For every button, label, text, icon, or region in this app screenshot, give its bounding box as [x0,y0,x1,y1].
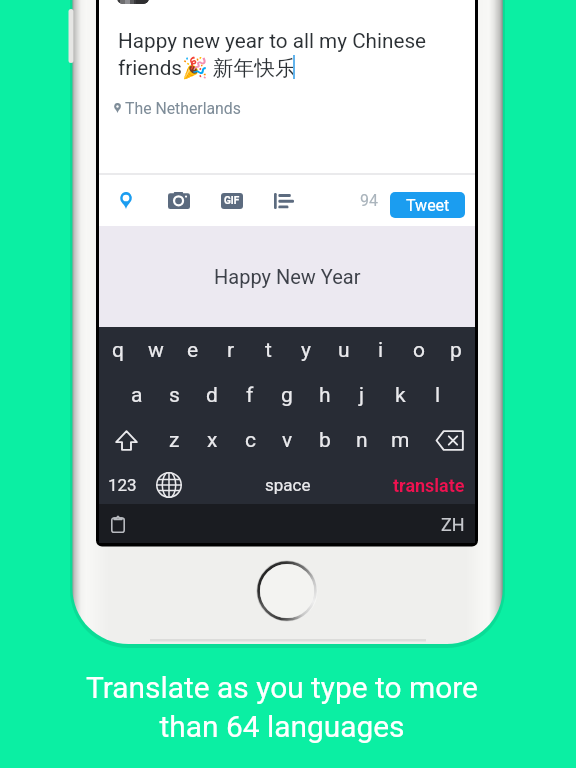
staticText: t [265,338,272,363]
staticText: f [246,383,254,408]
staticText: Happy new year to all my Chinese [118,29,427,53]
button[interactable]: t [249,329,287,371]
button[interactable]: Add GIF [211,180,253,222]
staticText: space [265,475,311,495]
button[interactable]: b [306,419,344,461]
staticText: s [169,383,180,408]
staticText: p [450,338,462,363]
staticText: Translate as you type to more than 64 la… [86,670,478,744]
button[interactable]: Space [218,464,358,506]
staticText: o [413,338,425,363]
staticText: Tweet [406,196,450,215]
button[interactable]: r [212,329,250,371]
button[interactable]: v [268,419,306,461]
button[interactable]: i [362,329,400,371]
button[interactable]: Add poll [263,180,305,222]
button[interactable]: Happy New Year [99,226,475,327]
button[interactable]: d [193,374,231,416]
button[interactable]: n [343,419,381,461]
staticText: g [281,383,293,408]
button[interactable]: x [193,419,231,461]
staticText: ZH [441,514,465,535]
staticText: v [282,428,293,453]
button[interactable]: g [268,374,306,416]
button[interactable]: Shift [103,418,149,462]
button[interactable]: z [155,419,193,461]
staticText: w [148,338,164,363]
button[interactable]: h [306,374,344,416]
button[interactable]: u [325,329,363,371]
button[interactable]: Add location [105,179,147,221]
staticText: n [356,428,368,453]
staticText: l [435,383,441,408]
button[interactable]: ZH [429,506,477,542]
staticText: q [112,338,124,363]
staticText: m [391,428,410,453]
staticText: j [359,383,365,408]
staticText: e [187,338,199,363]
button[interactable]: Clipboard [101,506,135,542]
button[interactable]: Camera [158,179,200,221]
button[interactable]: a [118,374,156,416]
staticText: h [319,383,331,408]
staticText: b [319,428,331,453]
staticText: GIF [224,195,240,207]
button[interactable]: e [174,329,212,371]
button[interactable]: f [231,374,269,416]
button[interactable]: s [155,374,193,416]
staticText: x [207,428,218,453]
staticText: Happy New Year [214,265,361,288]
button[interactable]: y [287,329,325,371]
staticText: z [169,428,180,453]
button[interactable]: c [231,419,269,461]
staticText: a [131,383,143,408]
button[interactable]: Translate [381,464,477,506]
staticText: y [301,338,311,363]
staticText: 123 [108,475,137,495]
staticText: 94 [360,191,378,210]
button[interactable]: p [437,329,475,371]
staticText: i [378,338,384,363]
button[interactable]: The Netherlands [110,95,247,122]
staticText: c [245,428,256,453]
button[interactable]: o [400,329,438,371]
button[interactable]: k [381,374,419,416]
button[interactable]: q [99,329,137,371]
button[interactable]: Tweet [390,192,465,218]
staticText: r [227,338,235,363]
button[interactable]: w [137,329,175,371]
staticText: friends🎉 新年快乐 [118,55,296,81]
button[interactable]: Profile picture [117,0,149,4]
button[interactable]: m [381,419,419,461]
staticText: d [206,383,218,408]
button[interactable]: Numbers [98,464,146,506]
staticText: translate [393,475,465,496]
button[interactable]: l [419,374,457,416]
staticText: k [395,383,406,408]
staticText: u [338,338,350,363]
button[interactable]: Switch language [147,464,191,506]
button[interactable]: Backspace [424,418,474,462]
button[interactable]: j [343,374,381,416]
staticText: The Netherlands [125,99,241,118]
